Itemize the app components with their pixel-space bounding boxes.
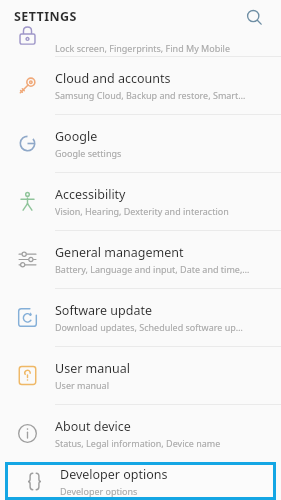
staticText: Software update — [55, 302, 152, 319]
staticText: Battery, Language and input, Date and ti… — [55, 263, 250, 275]
staticText: Developer options — [60, 466, 168, 483]
staticText: General management — [55, 244, 184, 261]
staticText: About device — [55, 418, 131, 435]
staticText: Lock screen, Fingerprints, Find My Mobil… — [55, 42, 230, 54]
staticText: Samsung Cloud, Backup and restore, Smart… — [55, 89, 246, 101]
button[interactable]: Developer options — [5, 462, 276, 500]
staticText: Accessibility — [55, 186, 126, 203]
button[interactable]: Cloud and accounts — [0, 57, 281, 114]
staticText: Developer options — [60, 485, 138, 497]
button[interactable]: Accessibility — [0, 173, 281, 230]
button[interactable]: Google — [0, 115, 281, 172]
staticText: Google — [55, 128, 98, 145]
button[interactable]: About device — [0, 405, 281, 462]
button[interactable]: User manual — [0, 347, 281, 404]
staticText: SETTINGS — [14, 8, 77, 25]
staticText: Cloud and accounts — [55, 70, 171, 87]
staticText: Status, Legal information, Device name — [55, 437, 221, 449]
staticText: Vision, Hearing, Dexterity and interacti… — [55, 205, 229, 217]
button[interactable]: General management — [0, 231, 281, 288]
staticText: Google settings — [55, 147, 122, 159]
button[interactable]: Search — [239, 2, 269, 32]
staticText: Download updates, Scheduled software up… — [55, 321, 243, 333]
button[interactable]: Software update — [0, 289, 281, 346]
staticText: User manual — [55, 379, 109, 391]
button[interactable]: Lock screen, Fingerprints, Find My Mobil… — [0, 33, 281, 56]
staticText: User manual — [55, 360, 130, 377]
